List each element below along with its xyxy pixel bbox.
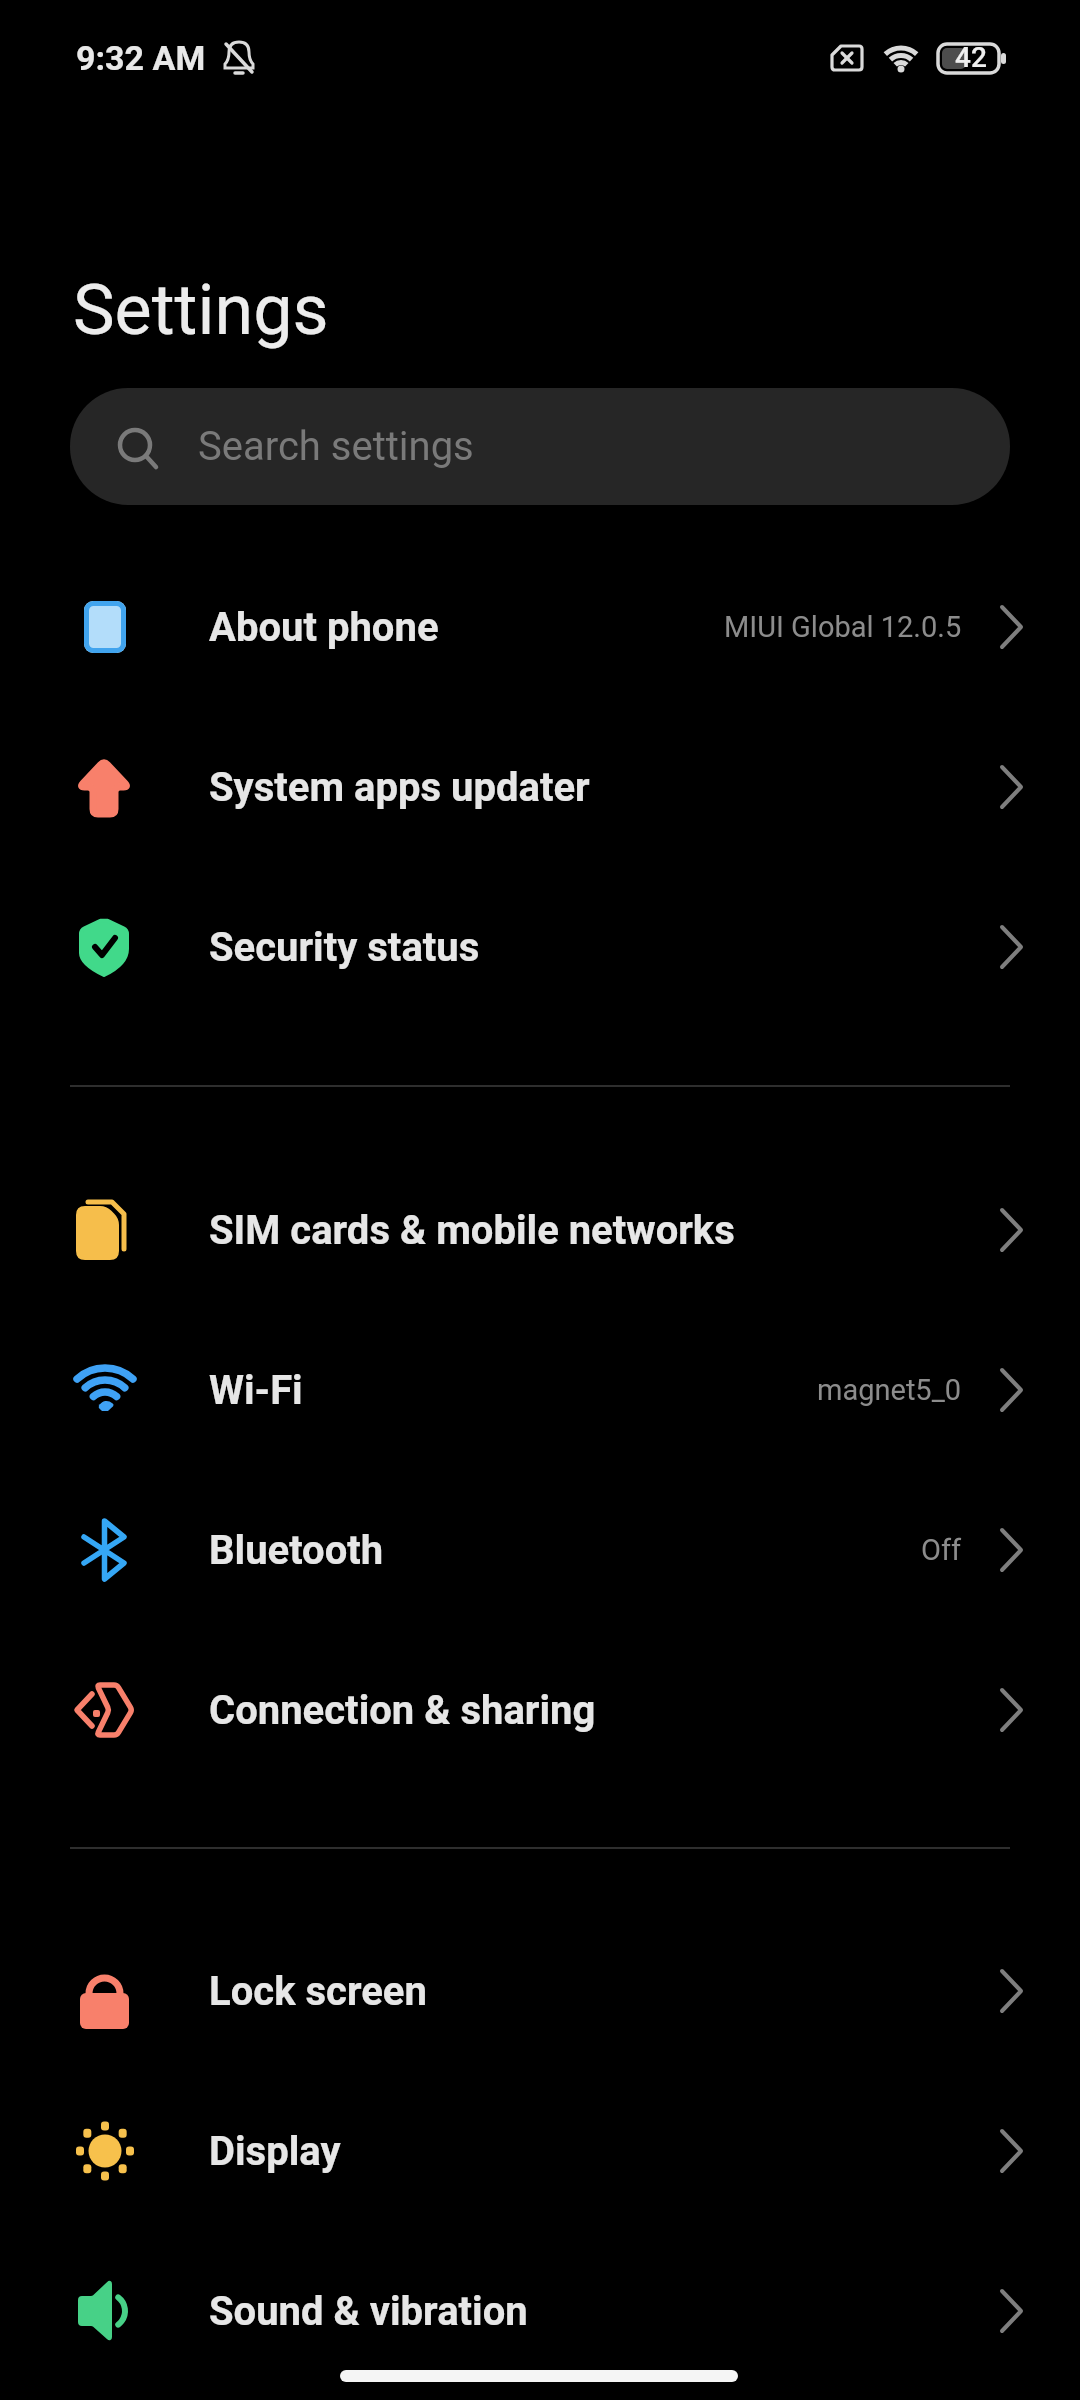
- staticText: 9:32 AM: [76, 38, 206, 78]
- button[interactable]: Sound & vibration: [0, 2231, 1080, 2391]
- button[interactable]: Display: [0, 2071, 1080, 2231]
- staticText: Search settings: [198, 423, 474, 470]
- button[interactable]: Wi-Fi: [0, 1310, 1080, 1470]
- staticText: 42: [955, 41, 987, 74]
- staticText: About phone: [209, 604, 439, 651]
- staticText: magnet5_0: [817, 1373, 962, 1407]
- staticText: Sound & vibration: [209, 2288, 528, 2335]
- button[interactable]: SIM cards & mobile networks: [0, 1150, 1080, 1310]
- staticText: Wi-Fi: [209, 1367, 303, 1414]
- staticText: Security status: [209, 924, 480, 971]
- button[interactable]: Security status: [0, 867, 1080, 1027]
- staticText: SIM cards & mobile networks: [209, 1207, 735, 1254]
- staticText: Off: [921, 1533, 962, 1567]
- staticText: MIUI Global 12.0.5: [724, 610, 962, 644]
- staticText: Settings: [73, 269, 329, 351]
- button[interactable]: About phone: [0, 547, 1080, 707]
- button[interactable]: Search settings: [70, 388, 1010, 505]
- staticText: Bluetooth: [209, 1527, 384, 1574]
- staticText: Lock screen: [209, 1968, 427, 2015]
- staticText: Connection & sharing: [209, 1687, 596, 1734]
- button[interactable]: System apps updater: [0, 707, 1080, 867]
- staticText: Display: [209, 2128, 341, 2175]
- staticText: System apps updater: [209, 764, 590, 811]
- button[interactable]: Connection & sharing: [0, 1630, 1080, 1790]
- button[interactable]: Bluetooth: [0, 1470, 1080, 1630]
- button[interactable]: Lock screen: [0, 1911, 1080, 2071]
